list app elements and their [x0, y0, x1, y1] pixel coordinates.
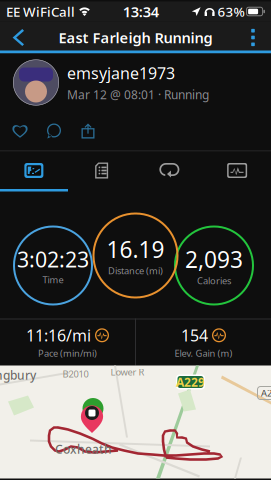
button[interactable]: Like	[3, 119, 37, 143]
staticText: emsyjane1973	[67, 62, 175, 84]
staticText: B2010	[62, 368, 88, 380]
staticText: Calories	[197, 274, 231, 287]
staticText: Pace (min/mi)	[38, 347, 97, 359]
button[interactable]: Comment	[37, 119, 71, 143]
staticText: Elev. Gain (m)	[174, 347, 232, 359]
button[interactable]: Share	[71, 119, 105, 143]
button[interactable]: Back	[0, 21, 36, 53]
staticText: A2	[261, 387, 271, 399]
button[interactable]: Map	[0, 151, 68, 189]
staticText: Lower R	[110, 366, 144, 378]
button[interactable]: Charts	[203, 151, 271, 189]
staticText: 2,093	[185, 244, 243, 274]
staticText: Mar 12 @ 08:01 · Running	[67, 87, 209, 103]
button[interactable]: Laps	[135, 151, 203, 189]
button[interactable]: More options	[235, 21, 271, 53]
staticText: A229	[176, 374, 205, 390]
staticText: ngbury	[0, 367, 36, 383]
staticText: 13:34	[123, 2, 159, 21]
button[interactable]: Details	[68, 151, 136, 189]
staticText: 11:16/mi	[26, 325, 91, 346]
staticText: 3:02:23	[17, 245, 89, 273]
staticText: 16.19	[106, 234, 164, 264]
staticText: Distance (mi)	[108, 264, 163, 277]
staticText: EE WiFiCall	[6, 3, 75, 20]
staticText: 63%	[218, 3, 245, 20]
staticText: Time	[42, 273, 63, 286]
staticText: East Farleigh Running	[58, 28, 212, 47]
staticText: Coxheath	[55, 441, 112, 457]
staticText: 154	[181, 325, 208, 346]
